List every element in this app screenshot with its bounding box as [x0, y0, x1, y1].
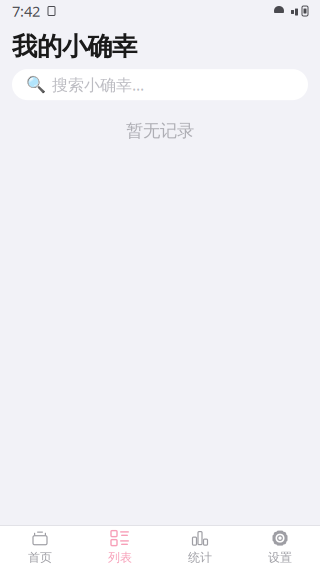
staticText: 首页	[28, 550, 52, 565]
staticText: 搜索小确幸...	[52, 74, 144, 95]
staticText: 我的小确幸	[12, 31, 137, 62]
button[interactable]: 设置	[240, 526, 320, 568]
button[interactable]: 统计	[160, 526, 240, 568]
staticText: 暂无记录	[126, 120, 194, 141]
staticText: 7:42	[12, 1, 40, 21]
staticText: 🔍	[26, 75, 46, 94]
staticText: 统计	[188, 550, 212, 565]
button[interactable]: 首页	[0, 526, 80, 568]
staticText: 设置	[268, 550, 292, 565]
staticText: 列表	[108, 550, 132, 565]
button[interactable]: 🔍	[12, 69, 308, 100]
button[interactable]: 列表	[80, 526, 160, 568]
